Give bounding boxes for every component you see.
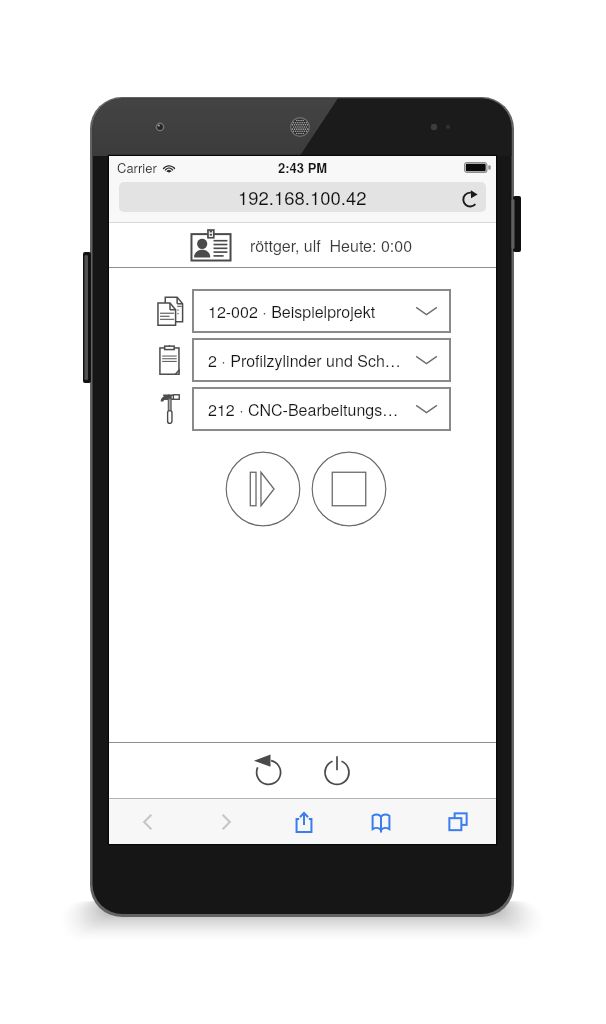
staticText: 2:43 PM [278,158,328,177]
staticText: 192.168.100.42 [238,184,367,210]
button[interactable]: Bookmarks [342,799,419,844]
button[interactable]: 2 · Profilzylinder und Sch… [192,338,451,382]
button[interactable]: Reload [461,187,482,208]
staticText: 12-002 · Beispielprojekt [208,300,376,323]
button[interactable]: 12-002 · Beispielprojekt [192,289,451,333]
button[interactable]: Share [265,799,342,844]
button[interactable]: Power [321,754,353,786]
staticText: Carrier [117,158,157,177]
button[interactable]: Back [109,799,187,844]
staticText: 2 · Profilzylinder und Sch… [208,349,401,372]
staticText: röttger, ulf Heute: 0:00 [250,234,413,257]
staticText: 212 · CNC-Bearbeitungs… [208,398,399,421]
button[interactable]: 212 · CNC-Bearbeitungs… [192,387,451,431]
button[interactable]: Forward [187,799,265,844]
button[interactable]: Undo [252,754,284,786]
button[interactable]: 192.168.100.42 [119,182,486,212]
button[interactable]: Tabs [419,799,496,844]
button[interactable]: Stop [311,451,387,527]
button[interactable]: Start [225,451,301,527]
